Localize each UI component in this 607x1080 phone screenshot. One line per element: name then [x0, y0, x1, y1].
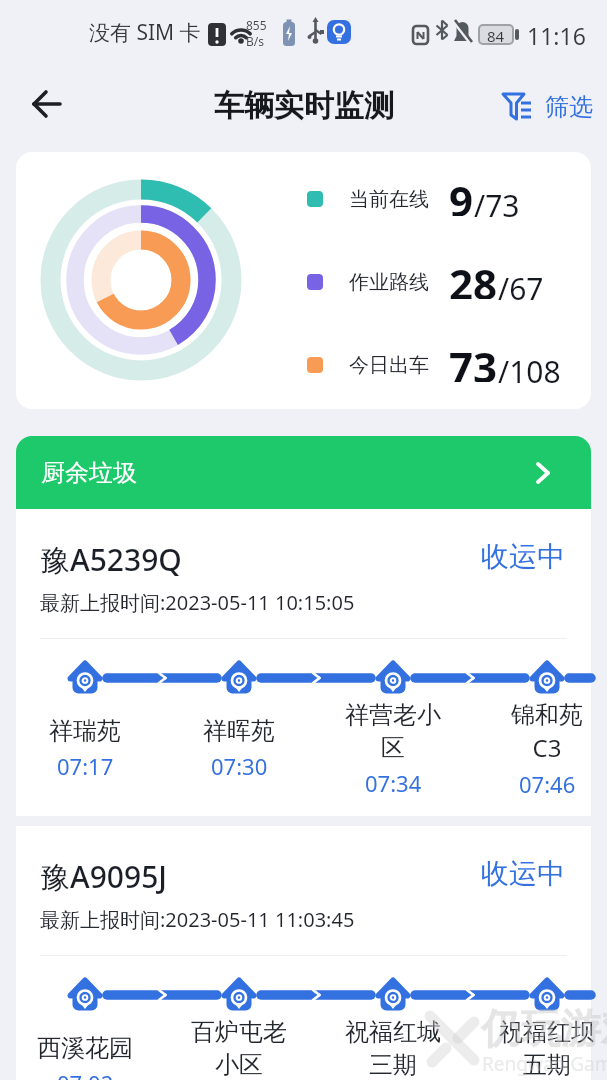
- button[interactable]: 豫A5239Q: [16, 509, 591, 816]
- staticText: 73: [449, 338, 498, 382]
- button[interactable]: [23, 86, 71, 122]
- staticText: B/s: [246, 33, 265, 49]
- button[interactable]: 筛选: [502, 91, 593, 122]
- staticText: Rengwan Games: [482, 1051, 607, 1077]
- staticText: 锦和苑 C3: [511, 700, 583, 764]
- staticText: 07:02: [57, 1068, 114, 1080]
- staticText: 仍玩游戏: [481, 1003, 607, 1053]
- button[interactable]: 厨余垃圾: [16, 436, 591, 509]
- staticText: 收运中: [481, 539, 565, 574]
- staticText: 855: [246, 17, 267, 33]
- staticText: 9: [449, 172, 474, 216]
- staticText: 最新上报时间:2023-05-11 10:15:05: [40, 589, 355, 616]
- staticText: 豫A5239Q: [40, 539, 182, 580]
- staticText: /108: [498, 351, 561, 392]
- staticText: 西溪花园: [37, 1033, 133, 1063]
- staticText: 今日出车: [349, 353, 429, 378]
- staticText: 07:17: [57, 751, 114, 781]
- staticText: /67: [498, 268, 544, 309]
- staticText: 祝福红城 三期: [345, 1017, 441, 1080]
- staticText: 11:16: [527, 20, 586, 51]
- staticText: 84: [487, 26, 505, 43]
- staticText: 07:30: [211, 751, 268, 781]
- staticText: 当前在线: [349, 187, 429, 212]
- staticText: 收运中: [481, 856, 565, 891]
- staticText: 车辆实时监测: [214, 87, 394, 125]
- staticText: 最新上报时间:2023-05-11 11:03:45: [40, 906, 355, 933]
- staticText: 祥营老小 区: [345, 700, 441, 763]
- staticText: 07:46: [519, 769, 576, 799]
- staticText: 作业路线: [349, 270, 429, 295]
- button[interactable]: 豫A9095J: [16, 826, 591, 1080]
- staticText: 百炉屯老 小区: [191, 1017, 287, 1080]
- staticText: 07:34: [365, 768, 422, 798]
- staticText: 祝福红坝 五期: [499, 1017, 595, 1080]
- staticText: 28: [449, 255, 498, 299]
- staticText: 祥瑞苑: [49, 716, 121, 746]
- staticText: /73: [474, 185, 520, 226]
- staticText: 厨余垃圾: [41, 458, 137, 488]
- staticText: 筛选: [545, 92, 593, 122]
- staticText: 祥晖苑: [203, 716, 275, 746]
- staticText: 豫A9095J: [40, 856, 167, 897]
- staticText: 没有 SIM 卡: [89, 18, 201, 47]
